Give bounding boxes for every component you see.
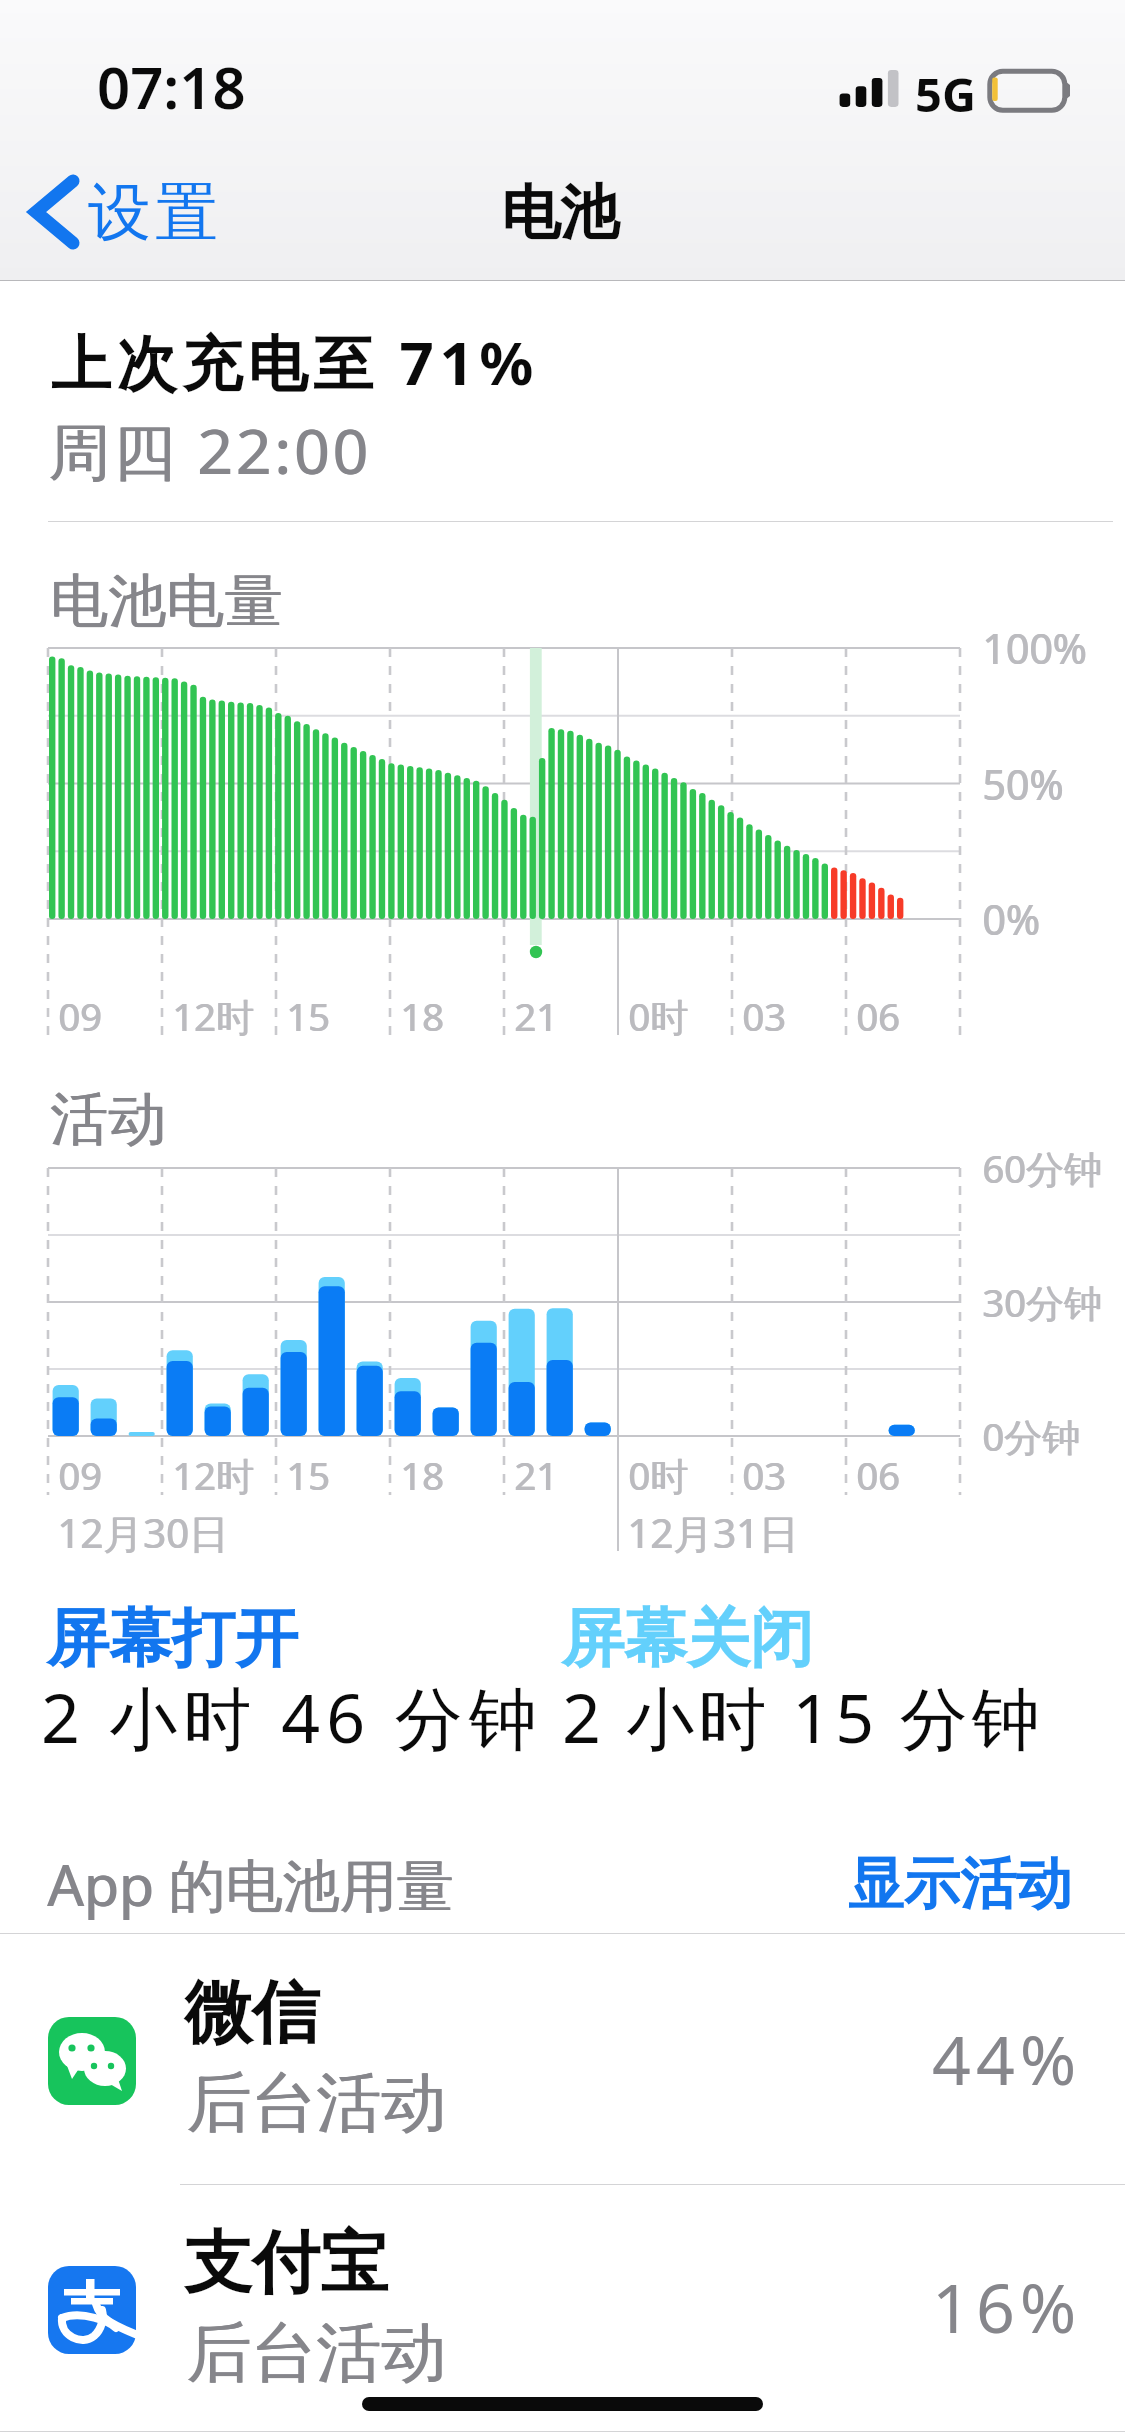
staticText: 显示活动 xyxy=(848,1849,1072,1920)
button[interactable]: 显示活动 xyxy=(828,1829,1100,1940)
staticText: 18 xyxy=(400,1449,444,1501)
staticText: 后台活动 xyxy=(186,2312,446,2394)
staticText: 5G xyxy=(915,62,976,126)
staticText: 50% xyxy=(983,756,1064,812)
staticText: 微信 xyxy=(184,1971,320,2057)
staticText: 60分钟 xyxy=(983,1142,1103,1194)
staticText: 12时 xyxy=(173,1449,255,1501)
staticText: 03 xyxy=(743,990,787,1042)
staticText: 09 xyxy=(59,1449,103,1501)
staticText: 0分钟 xyxy=(983,1410,1081,1462)
staticText: App 的电池用量 xyxy=(47,1845,454,1923)
staticText: 15 xyxy=(287,1449,331,1501)
staticText: 后台活动 xyxy=(186,2062,446,2144)
staticText: 2 小时 46 分钟 xyxy=(41,1670,543,1763)
staticText: 屏幕打开 xyxy=(46,1599,298,1678)
staticText: 12时 xyxy=(172,1449,254,1501)
staticText: 12月30日 xyxy=(58,1505,230,1560)
button[interactable]: 微信 xyxy=(0,1931,1125,2184)
staticText: 21 xyxy=(514,1449,558,1501)
staticText: 上次充电至 71% xyxy=(51,321,539,403)
staticText: 21 xyxy=(515,1449,559,1501)
staticText: 09 xyxy=(59,990,103,1042)
staticText: 12时 xyxy=(172,990,254,1042)
staticText: 07:18 xyxy=(97,47,246,126)
staticText: 设置 xyxy=(86,173,220,252)
staticText: 03 xyxy=(743,1449,787,1501)
staticText: 21 xyxy=(514,990,558,1042)
staticText: 0% xyxy=(983,891,1041,947)
staticText: 06 xyxy=(856,1449,900,1501)
staticText: 活动 xyxy=(50,1083,166,1156)
staticText: 15 xyxy=(287,990,331,1042)
staticText: 0时 xyxy=(629,1449,689,1501)
staticText: 周四 22:00 xyxy=(48,408,371,493)
staticText: 100% xyxy=(983,620,1088,676)
staticText: 15 xyxy=(286,1449,330,1501)
staticText: 30分钟 xyxy=(982,1276,1102,1328)
staticText: 0时 xyxy=(628,1449,688,1501)
staticText: 18 xyxy=(401,1449,445,1501)
staticText: 12月31日 xyxy=(627,1505,799,1560)
staticText: 周四 22:00 xyxy=(49,408,372,493)
staticText: 18 xyxy=(401,990,445,1042)
staticText: 0时 xyxy=(628,990,688,1042)
staticText: 12月31日 xyxy=(628,1505,800,1560)
staticText: 12月30日 xyxy=(57,1505,229,1560)
staticText: 30分钟 xyxy=(983,1276,1103,1328)
staticText: 后台活动 xyxy=(187,2312,447,2394)
staticText: 60分钟 xyxy=(982,1142,1102,1194)
staticText: 16% xyxy=(932,2260,1082,2353)
staticText: 50% xyxy=(982,756,1063,812)
other: 返回设置 xyxy=(29,170,86,254)
button[interactable]: 支付宝 xyxy=(0,2185,1125,2436)
staticText: 03 xyxy=(742,990,786,1042)
staticText: 12时 xyxy=(173,990,255,1042)
staticText: 电池电量 xyxy=(51,565,283,638)
staticText: 100% xyxy=(982,620,1087,676)
staticText: 2 小时 15 分钟 xyxy=(562,1670,1044,1763)
staticText: 03 xyxy=(742,1449,786,1501)
staticText: 0分钟 xyxy=(982,1410,1080,1462)
staticText: 电池电量 xyxy=(50,565,282,638)
staticText: 0% xyxy=(982,891,1040,947)
staticText: 06 xyxy=(856,990,900,1042)
staticText: 0时 xyxy=(629,990,689,1042)
staticText: 06 xyxy=(857,1449,901,1501)
staticText: 44% xyxy=(932,2012,1082,2105)
staticText: 09 xyxy=(58,990,102,1042)
staticText: 06 xyxy=(857,990,901,1042)
staticText: 18 xyxy=(400,990,444,1042)
staticText: 屏幕关闭 xyxy=(561,1599,813,1678)
staticText: App 的电池用量 xyxy=(48,1845,455,1923)
staticText: 09 xyxy=(58,1449,102,1501)
staticText: 电池 xyxy=(501,176,619,250)
staticText: 后台活动 xyxy=(187,2062,447,2144)
staticText: 21 xyxy=(515,990,559,1042)
staticText: 活动 xyxy=(51,1083,167,1156)
button[interactable]: 返回设置 xyxy=(29,170,220,254)
staticText: 支付宝 xyxy=(184,2221,388,2307)
staticText: 15 xyxy=(286,990,330,1042)
